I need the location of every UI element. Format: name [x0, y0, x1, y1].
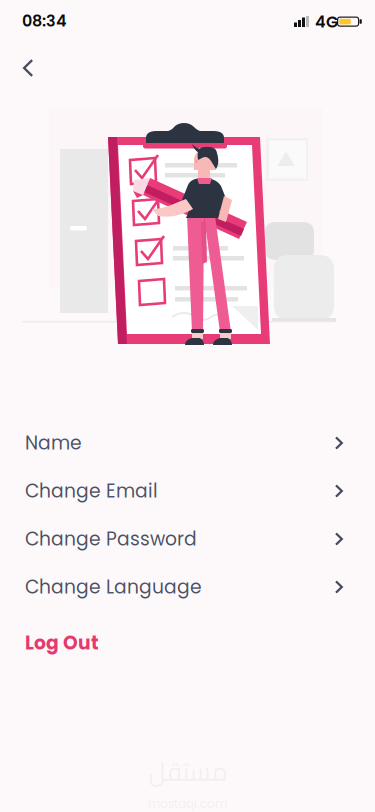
button[interactable]: Change Email: [0, 467, 375, 515]
staticText: Change Password: [25, 526, 197, 552]
button[interactable]: Name: [0, 419, 375, 467]
button[interactable]: Log Out: [0, 619, 375, 667]
staticText: 08:34: [22, 10, 67, 32]
button[interactable]: Back: [3, 46, 53, 90]
staticText: Change Email: [25, 478, 158, 504]
button[interactable]: Change Password: [0, 515, 375, 563]
staticText: 4G: [315, 11, 338, 33]
staticText: Log Out: [25, 630, 99, 656]
staticText: Name: [25, 430, 82, 456]
staticText: Change Language: [25, 574, 202, 600]
button[interactable]: Change Language: [0, 563, 375, 611]
